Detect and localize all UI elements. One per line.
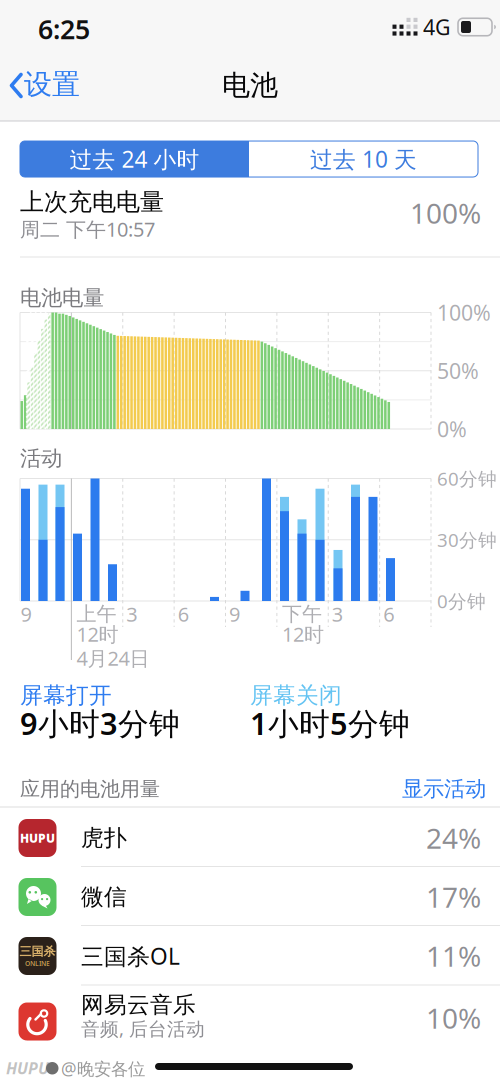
staticText: 三国杀 [19,944,55,959]
staticText: 电池 [222,68,278,103]
staticText: 音频, 后台活动 [81,1016,205,1041]
staticText: 0% [437,415,467,443]
staticText: 6 [383,601,394,627]
staticText: 屏幕关闭 [250,682,342,709]
staticText: 周二 下午10:57 [20,216,155,242]
staticText: 应用的电池用量 [20,777,160,801]
button[interactable]: 网易云音乐 [0,985,500,1058]
button[interactable]: 返回设置 [8,63,88,108]
staticText: @晚安各位 [61,1057,145,1080]
staticText: 4G [423,13,451,41]
staticText: 12时 [282,621,324,647]
staticText: 1小时5分钟 [250,703,410,743]
staticText: 12时 [76,621,118,647]
staticText: 100% [410,194,481,232]
staticText: 虎扑 [81,824,127,852]
button[interactable]: 三国杀 [0,926,500,985]
staticText: 4月24日 [76,645,149,671]
staticText: 11% [426,937,481,975]
staticText: 屏幕打开 [20,682,112,709]
staticText: HUPU [6,1057,49,1079]
staticText: 6:25 [38,11,90,47]
staticText: ONLINE [25,959,50,968]
button[interactable]: 微信 [0,867,500,926]
staticText: 3 [126,601,137,627]
staticText: 9 [229,601,240,627]
staticText: 100% [437,298,491,327]
staticText: 下午 [282,602,322,626]
staticText: 上午 [76,602,116,626]
staticText: HUPU [20,830,55,846]
button[interactable]: 过去 10 天 [249,141,478,177]
staticText: 24% [426,819,481,857]
staticText: 0分钟 [437,589,486,613]
staticText: 活动 [20,445,62,472]
button[interactable]: 过去 24 小时 [20,141,249,177]
button[interactable]: HUPU [0,808,500,867]
staticText: 显示活动 [402,776,486,802]
staticText: 17% [426,878,481,916]
staticText: 网易云音乐 [81,991,196,1019]
staticText: 6 [178,601,189,627]
staticText: 过去 10 天 [310,144,417,174]
staticText: 10% [426,999,481,1037]
staticText: 9小时3分钟 [20,703,180,743]
staticText: 电池电量 [20,285,104,311]
staticText: 微信 [81,883,127,911]
staticText: 上次充电电量 [20,187,164,217]
staticText: 30分钟 [437,527,497,552]
staticText: 60分钟 [437,466,497,491]
staticText: 设置 [24,67,80,102]
button[interactable]: 显示活动 [407,774,481,804]
staticText: 三国杀OL [81,941,180,971]
staticText: 9 [20,601,31,627]
staticText: 过去 24 小时 [69,144,199,174]
staticText: 50% [437,357,479,385]
staticText: 3 [332,601,343,627]
